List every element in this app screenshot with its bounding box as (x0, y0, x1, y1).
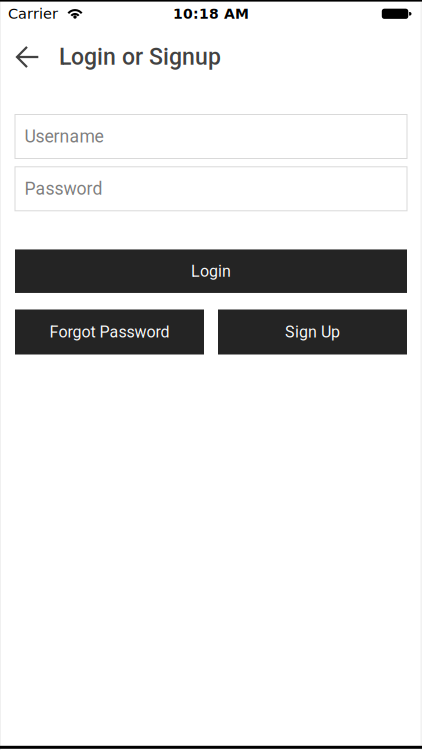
button[interactable]: Back (16, 46, 39, 67)
staticText: 10:18 AM (173, 6, 249, 22)
button[interactable]: Login (15, 249, 407, 293)
button[interactable]: Forgot Password (15, 309, 204, 354)
staticText: Password (24, 178, 102, 199)
button[interactable]: Sign Up (218, 309, 407, 354)
staticText: Username (24, 126, 103, 147)
staticText: Login (191, 262, 231, 281)
staticText: Forgot Password (49, 323, 169, 341)
staticText: Carrier (8, 5, 58, 22)
staticText: Sign Up (285, 323, 340, 341)
staticText: Login or Signup (59, 43, 221, 70)
